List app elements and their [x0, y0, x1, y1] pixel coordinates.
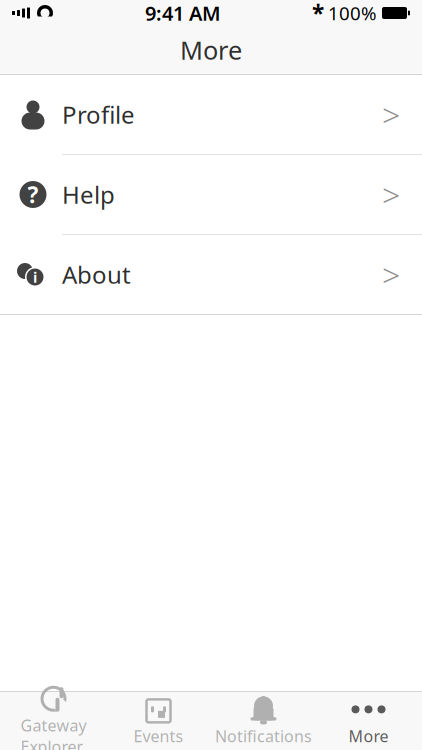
staticText: More: [348, 725, 388, 747]
staticText: 100%: [328, 1, 377, 25]
button[interactable]: More: [316, 692, 421, 750]
staticText: *: [312, 0, 324, 28]
button[interactable]: i: [0, 235, 422, 314]
staticText: Help: [62, 179, 115, 210]
staticText: Events: [133, 725, 183, 747]
staticText: >: [382, 173, 400, 216]
staticText: i: [33, 267, 37, 287]
staticText: ?: [27, 179, 38, 209]
staticText: 9:41 AM: [145, 0, 221, 26]
button[interactable]: ?: [0, 155, 422, 234]
staticText: More: [180, 33, 242, 67]
button[interactable]: Notifications: [211, 692, 316, 750]
staticText: About: [62, 259, 131, 290]
button[interactable]: Gateway Explorer: [1, 692, 106, 750]
button[interactable]: Profile: [0, 75, 422, 154]
staticText: >: [382, 93, 400, 136]
staticText: Gateway Explorer: [20, 715, 86, 750]
staticText: >: [382, 253, 400, 296]
staticText: Notifications: [215, 725, 312, 747]
button[interactable]: Events: [106, 692, 211, 750]
staticText: Profile: [62, 99, 135, 130]
